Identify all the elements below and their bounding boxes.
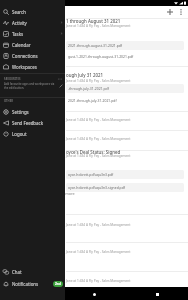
button[interactable]: Activity [0,17,65,28]
staticText: oyce-hobrett-pdfuqu3n3-signed.pdf [68,185,125,190]
staticText: Calendar [12,42,31,48]
button[interactable]: Edit favourites [57,82,65,90]
staticText: Chat [12,269,22,275]
button[interactable]: oyce's Deal Status: Signed [66,149,185,155]
button[interactable]: Workspaces [0,61,65,72]
staticText: OTHER [4,99,13,103]
staticText: Jane at 1:434 A Fly Pay - Sales Manageme… [66,154,131,158]
button[interactable]: Recents [152,289,162,299]
staticText: 2nd [55,282,61,286]
button[interactable]: -through-july-31-2021.pdf [66,84,184,93]
staticText: oyce's Deal Status: Signed [66,149,121,155]
button[interactable]: Tasks [0,28,65,39]
staticText: Add favourite apps and workspaces via th… [4,82,56,90]
button[interactable]: gust-1-2021-through-august-31-2021.pdf [66,52,184,61]
staticText: Workspaces [12,64,37,70]
staticText: Search [12,9,26,15]
staticText: Jane at 1:434 A Fly Pay - Sales Manageme… [66,24,131,28]
button[interactable]: oyce-hobrett-pdfuqu3n3-signed.pdf [66,183,184,192]
staticText: Jane at 1:434 A Fly Pay - Sales Manageme… [66,137,131,141]
button[interactable]: 1 through August 31 2021 [66,18,185,24]
staticText: 2021-through-july-31-2021.pdf [68,98,117,103]
button[interactable]: 2021-through-july-31-2021.pdf [66,96,184,105]
button[interactable]: FAVOURITES [0,76,65,82]
other: Favourites options [58,77,62,81]
button[interactable]: Chat [0,266,65,277]
staticText: Activity [12,20,27,26]
button[interactable]: Send Feedback [0,117,65,128]
staticText: Connections [12,53,38,59]
staticText: gust-1-2021-through-august-31-2021.pdf [68,54,134,59]
button[interactable]: More options [175,6,186,17]
staticText: -through-july-31-2021.pdf [68,86,109,91]
staticText: Jane at 1:434 A Fly Pay - Sales Manageme… [66,279,131,283]
staticText: Send Feedback [12,120,43,126]
staticText: 2 more [62,191,75,196]
staticText: Settings [12,109,29,115]
button[interactable]: oyce-hobrett-pdfuqu3n3.pdf [66,170,184,179]
staticText: FAVOURITES [4,77,21,81]
staticText: Logout [12,131,27,137]
staticText: Notifications [12,281,39,287]
staticText: Jane at 1:434 A Fly Pay - Sales Manageme… [66,223,131,227]
button[interactable]: 2021-through-august-31-2021.pdf [66,41,184,50]
staticText: 1 through August 31 2021 [66,18,121,24]
staticText: oyce-hobrett-pdfuqu3n3.pdf [68,172,114,177]
button[interactable]: Home [89,289,99,299]
button[interactable]: Settings [0,106,65,117]
button[interactable]: 2 more [0,188,188,198]
button[interactable]: Connections [0,50,65,61]
button[interactable]: Add [164,6,175,17]
button[interactable]: Calendar [0,39,65,50]
button[interactable]: ough July 31 2021 [66,72,185,78]
staticText: Jane at 1:434 A Fly Pay - Sales Manageme… [66,250,131,254]
staticText: Tasks [12,31,24,37]
button[interactable]: Notifications [0,278,65,289]
staticText: Jane at 1:434 A Fly Pay - Sales Manageme… [66,79,131,83]
staticText: Jane at 1:434 A Fly Pay - Sales Manageme… [66,118,131,122]
staticText: 2021-through-august-31-2021.pdf [68,43,123,48]
button[interactable]: Logout [0,128,65,139]
button[interactable]: Search [0,6,65,17]
staticText: ough July 31 2021 [66,72,103,78]
